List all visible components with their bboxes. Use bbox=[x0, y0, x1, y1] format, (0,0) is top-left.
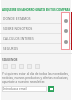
button[interactable]: Introduzca email bbox=[2, 86, 47, 92]
staticText: CALCULOS INTERES bbox=[3, 37, 34, 41]
button[interactable]: Share bbox=[64, 40, 68, 44]
staticText: Y si quieres estar al dia de todas las n… bbox=[2, 72, 70, 84]
button[interactable]: Social 1 bbox=[11, 64, 16, 69]
button[interactable]: Share bbox=[64, 19, 68, 23]
staticText: Introduzca email bbox=[3, 87, 27, 91]
button[interactable]: Social 0 bbox=[3, 64, 8, 69]
button[interactable]: SEGUROS bbox=[0, 44, 72, 54]
button[interactable]: Social 4 bbox=[35, 64, 40, 69]
button[interactable]: SOBRE NOSOTROS bbox=[0, 24, 72, 34]
button[interactable]: DONDE ESTAMOS bbox=[0, 14, 72, 24]
button[interactable]: Enviar bbox=[48, 86, 54, 92]
button[interactable]: Social 3 bbox=[27, 64, 32, 69]
staticText: SOBRE NOSOTROS bbox=[3, 27, 33, 31]
button[interactable]: Share bbox=[64, 29, 68, 33]
button[interactable]: CALCULOS INTERES bbox=[0, 34, 72, 44]
staticText: SEGUROS bbox=[3, 47, 19, 51]
staticText: DONDE ESTAMOS bbox=[3, 17, 31, 21]
staticText: ADQUIERE UN AHORRO GRATIS EN TUS COMPRAS bbox=[0, 8, 72, 12]
button[interactable]: Social 2 bbox=[19, 64, 24, 69]
staticText: SIGUENOS bbox=[2, 58, 18, 62]
